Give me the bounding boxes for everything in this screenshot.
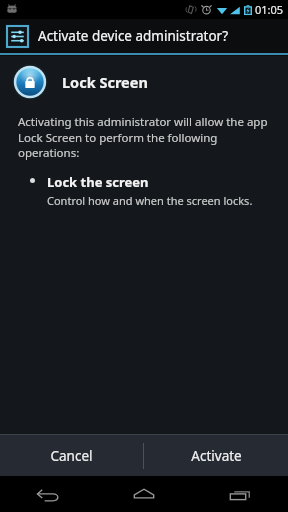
staticText: Activate <box>191 447 242 465</box>
button[interactable]: Home <box>96 476 192 512</box>
button[interactable]: Recent apps <box>192 476 288 512</box>
staticText: Activating this administrator will allow… <box>18 114 276 160</box>
staticText: Activate device administrator? <box>38 27 228 45</box>
button[interactable]: Activate <box>144 435 288 476</box>
staticText: Control how and when the screen locks. <box>47 193 253 208</box>
staticText: Lock Screen <box>62 72 148 92</box>
staticText: Cancel <box>50 447 93 465</box>
button[interactable]: Cancel <box>0 435 143 476</box>
staticText: 01:05 <box>255 2 284 17</box>
button[interactable]: Back <box>0 476 96 512</box>
staticText: Lock the screen <box>47 173 149 191</box>
